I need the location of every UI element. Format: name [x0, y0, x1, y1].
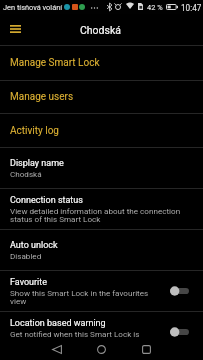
- staticText: 42 %: [147, 3, 163, 12]
- staticText: Auto unlock: [10, 240, 58, 251]
- staticText: Manage Smart Lock: [10, 57, 100, 69]
- staticText: Favourite: [10, 277, 47, 288]
- button[interactable]: Recent apps: [129, 337, 164, 360]
- staticText: Disabled: [10, 251, 42, 260]
- staticText: Activity log: [10, 125, 59, 137]
- staticText: Jen tísňová volání: [3, 3, 63, 12]
- button[interactable]: Manage users: [0, 81, 203, 113]
- button[interactable]: Home: [84, 337, 119, 360]
- button[interactable]: Connection status: [0, 189, 203, 229]
- button[interactable]: Activity log: [0, 114, 203, 147]
- button[interactable]: Display name: [0, 148, 203, 188]
- staticText: 10:47: [181, 3, 202, 13]
- button[interactable]: Auto unlock: [0, 230, 203, 270]
- staticText: Connection status: [10, 195, 83, 206]
- staticText: Display name: [10, 158, 64, 169]
- button[interactable]: Manage Smart Lock: [0, 46, 203, 80]
- staticText: View detailed information about the conn…: [10, 206, 193, 224]
- button[interactable]: Location based warning: [0, 312, 203, 352]
- staticText: Manage users: [10, 91, 74, 103]
- staticText: Chodská: [80, 24, 121, 36]
- staticText: Chodská: [10, 169, 42, 178]
- staticText: Location based warning: [10, 318, 106, 329]
- staticText: Get notified when this Smart Lock is ope…: [10, 329, 154, 347]
- button[interactable]: Favourite: [0, 271, 203, 311]
- button[interactable]: Toggle: [170, 284, 189, 298]
- button[interactable]: Back: [39, 337, 74, 360]
- button[interactable]: Toggle: [170, 325, 189, 339]
- staticText: Show this Smart Lock in the favourites v…: [10, 288, 154, 306]
- button[interactable]: Open navigation menu: [0, 14, 31, 45]
